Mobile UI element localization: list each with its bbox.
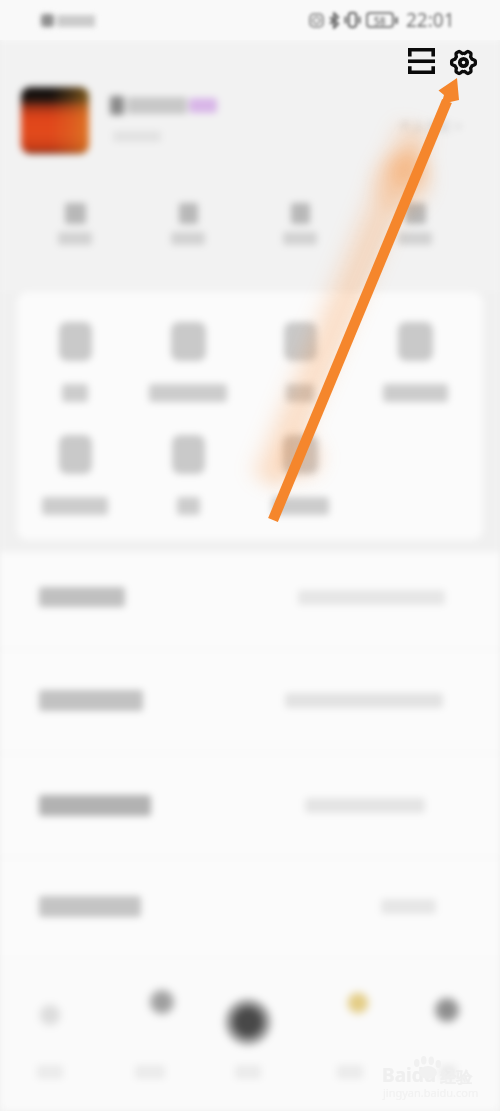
button[interactable]: Messages: [316, 958, 400, 1062]
button[interactable]: [248, 322, 352, 404]
button[interactable]: [250, 190, 350, 260]
button[interactable]: [0, 547, 500, 647]
button[interactable]: Settings: [441, 40, 485, 84]
button[interactable]: [136, 435, 240, 517]
button[interactable]: [0, 856, 500, 956]
button[interactable]: [23, 322, 127, 404]
button[interactable]: Avatar: [21, 87, 89, 154]
staticText: Baidu: [382, 1062, 437, 1088]
button[interactable]: Video: [120, 957, 204, 1061]
staticText: 个人主页 >: [399, 117, 462, 135]
button[interactable]: [0, 755, 500, 855]
staticText: 22:01: [406, 7, 455, 33]
button[interactable]: 个人主页 >: [399, 117, 462, 135]
staticText: 经验: [440, 1068, 472, 1088]
button[interactable]: Profile: [405, 965, 489, 1069]
button[interactable]: [23, 435, 127, 517]
button[interactable]: [365, 190, 465, 260]
button[interactable]: [138, 190, 238, 260]
button[interactable]: [248, 435, 352, 517]
button[interactable]: Post: [206, 977, 290, 1081]
button[interactable]: [363, 322, 467, 404]
button[interactable]: [25, 190, 125, 260]
button[interactable]: Home: [8, 970, 92, 1074]
button[interactable]: Multi window: [399, 39, 443, 83]
button[interactable]: [0, 650, 500, 750]
button[interactable]: [136, 322, 240, 404]
staticText: 58: [374, 14, 386, 26]
